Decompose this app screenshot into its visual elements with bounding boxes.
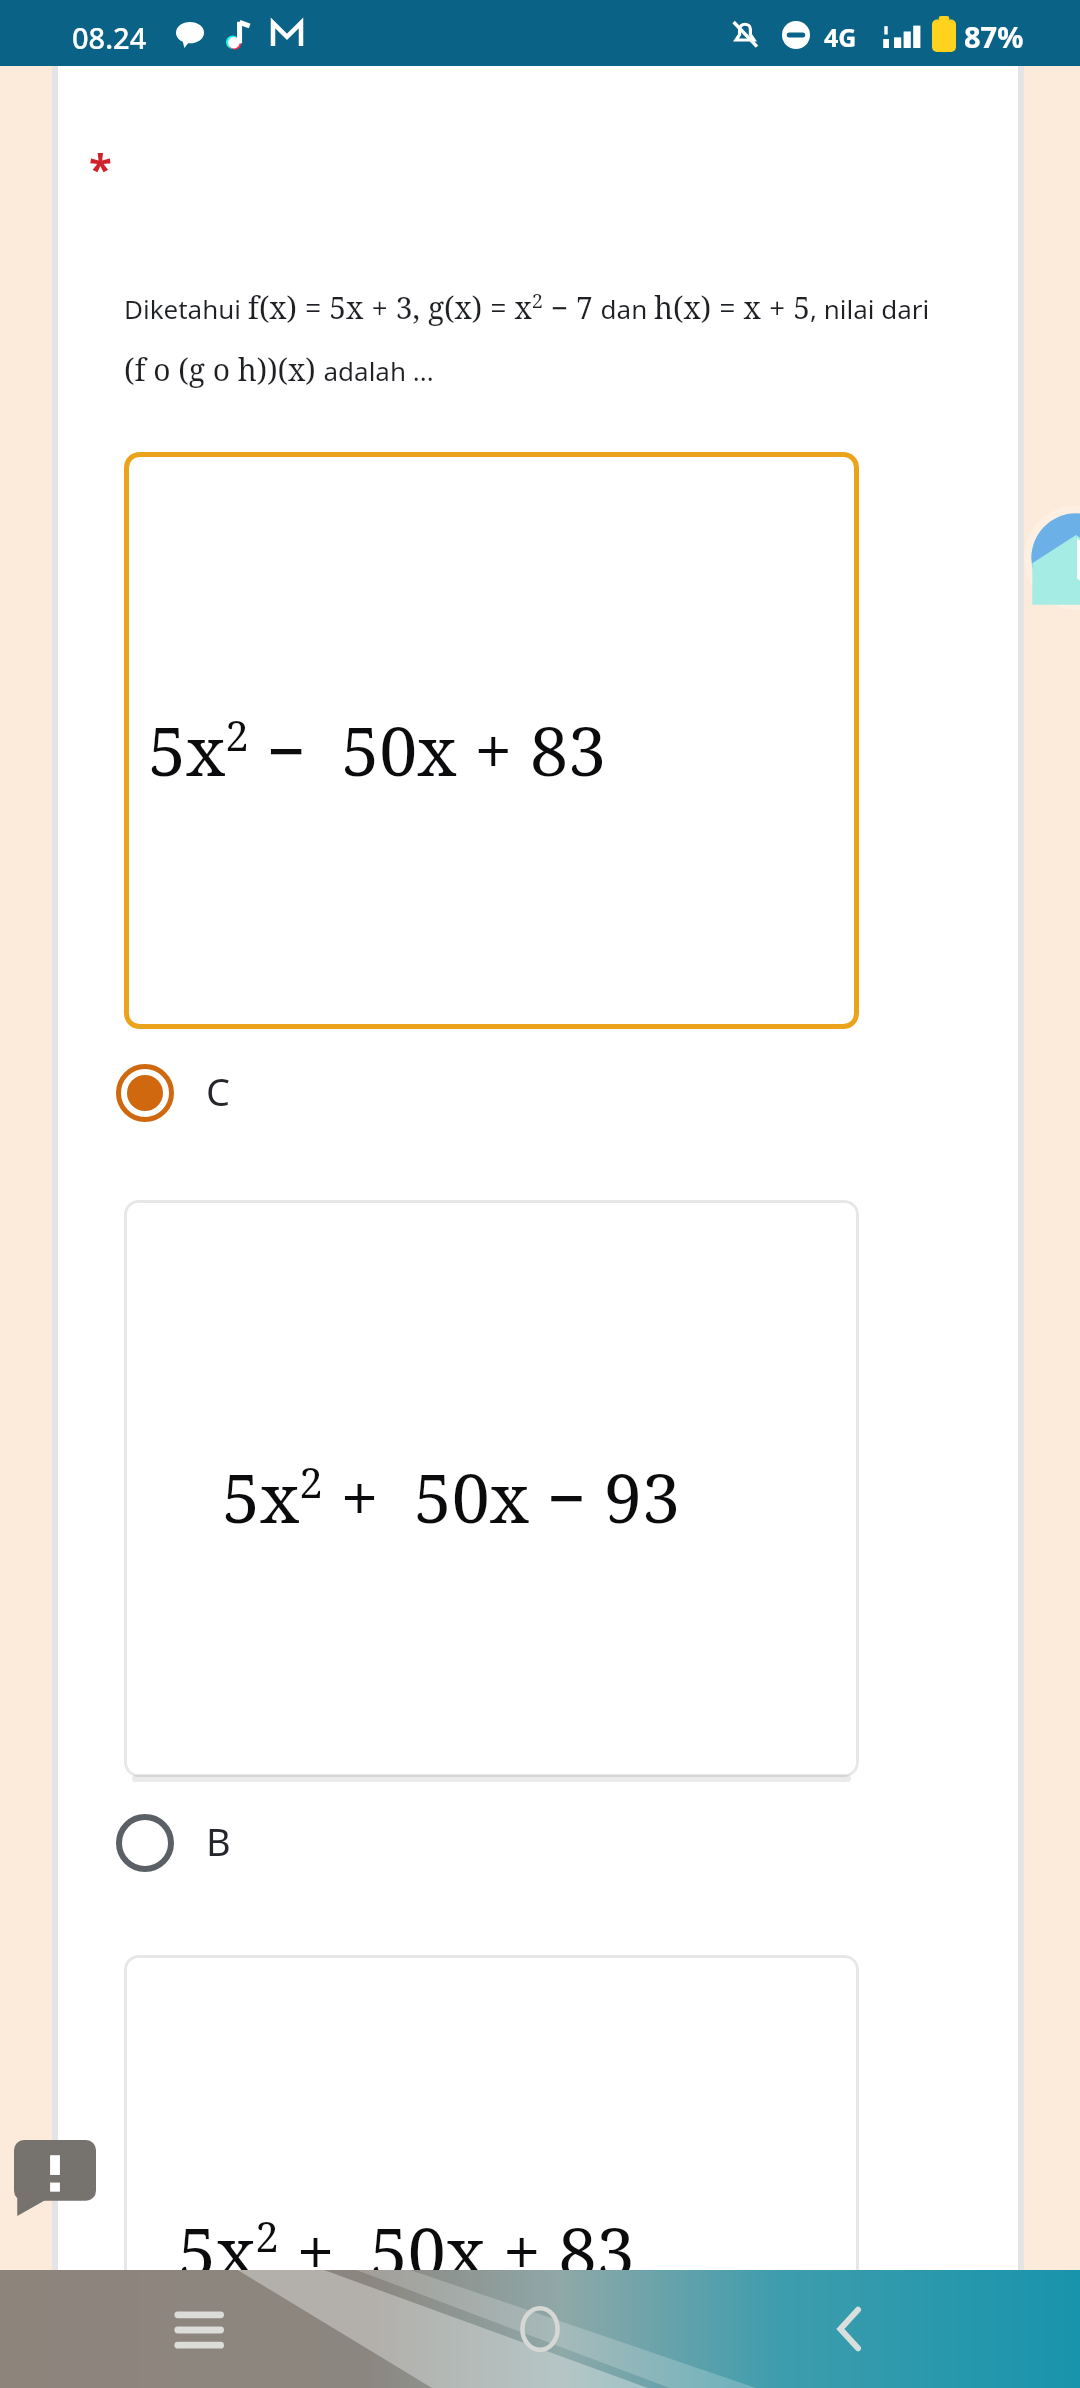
staticText: 87% <box>964 17 1024 56</box>
staticText: C <box>206 1065 231 1117</box>
button[interactable]: Report a problem <box>14 2140 96 2216</box>
staticText: (f o (g o h))(x) adalah ... <box>124 349 984 390</box>
button[interactable]: Option C: 5x squared minus 50x plus 83 <box>124 452 859 1029</box>
staticText: Diketahui f(x) = 5x + 3, g(x) = x2 − 7 d… <box>124 287 984 328</box>
button[interactable]: Option B: 5x squared plus 50x minus 93 <box>124 1200 859 1777</box>
staticText: B <box>206 1815 231 1867</box>
button[interactable]: Recent apps <box>160 2289 240 2369</box>
button[interactable]: Home <box>500 2289 580 2369</box>
staticText: 5x2 + 50x − 93 <box>222 1450 680 1543</box>
button[interactable]: Floating assistant <box>1024 506 1080 610</box>
button[interactable]: B <box>108 1797 308 1889</box>
button[interactable]: Back <box>810 2289 890 2369</box>
staticText: * <box>89 139 112 196</box>
button[interactable]: C <box>108 1047 308 1139</box>
staticText: 5x2 + 50x + 83 <box>178 2204 635 2297</box>
staticText: 4G <box>824 20 857 54</box>
staticText: 08.24 <box>72 18 147 57</box>
staticText: 5x2 − 50x + 83 <box>148 703 606 796</box>
button[interactable]: Option A: 5x squared plus 50x plus 83 <box>124 1955 859 2388</box>
